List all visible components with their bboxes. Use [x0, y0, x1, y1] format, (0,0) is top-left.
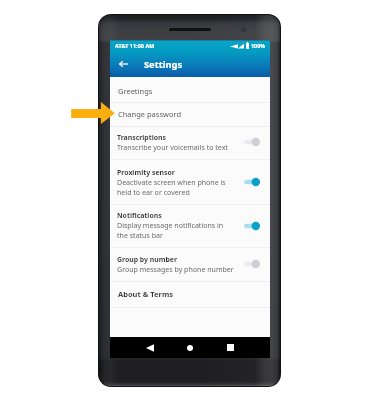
- staticText: held to ear or covered: [117, 187, 190, 197]
- staticText: AT&T 11:00 AM: [115, 42, 155, 49]
- staticText: the status bar: [117, 230, 163, 240]
- staticText: Notifications: [117, 211, 162, 220]
- button[interactable]: About & Terms: [110, 281, 270, 307]
- staticText: Group by number: [117, 255, 178, 264]
- button[interactable]: Toggle: [244, 221, 260, 231]
- staticText: Greetings: [118, 86, 153, 96]
- button[interactable]: Change password: [110, 102, 270, 126]
- staticText: About & Terms: [118, 289, 173, 299]
- staticText: Deactivate screen when phone is: [117, 177, 226, 187]
- button[interactable]: Group by number: [110, 247, 270, 281]
- staticText: Group messages by phone number: [117, 264, 234, 274]
- button[interactable]: Back: [137, 337, 163, 358]
- button[interactable]: Notifications: [110, 204, 270, 247]
- staticText: Change password: [118, 109, 182, 119]
- button[interactable]: Toggle: [244, 137, 260, 147]
- staticText: Display message notifications in: [117, 220, 224, 230]
- button[interactable]: Transcriptions: [110, 126, 270, 158]
- staticText: Proximity sensor: [117, 168, 175, 177]
- button[interactable]: Greetings: [110, 79, 270, 102]
- staticText: 100%: [251, 42, 266, 49]
- button[interactable]: Toggle: [244, 177, 260, 187]
- button[interactable]: Home: [177, 337, 203, 358]
- staticText: Settings: [144, 58, 183, 71]
- staticText: Transcribe your voicemails to text: [117, 142, 228, 152]
- button[interactable]: Recent apps: [217, 337, 243, 358]
- staticText: Transcriptions: [117, 133, 166, 142]
- button[interactable]: Proximity sensor: [110, 159, 270, 205]
- button[interactable]: Toggle: [244, 259, 260, 269]
- button[interactable]: Navigate up: [110, 51, 136, 77]
